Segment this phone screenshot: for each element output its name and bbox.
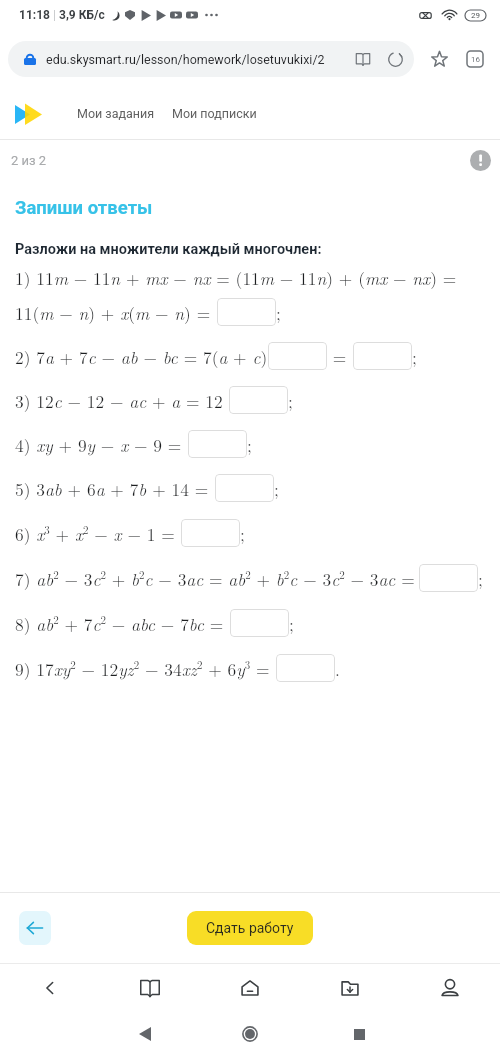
button[interactable] [268, 342, 327, 370]
other: Reload [387, 51, 404, 68]
button[interactable]: Profile [400, 964, 500, 1012]
staticText: 6) x3 + x2 − x − 1 = [15, 521, 175, 546]
staticText: 8) ab2 + 7c2 − abc − 7bc = [15, 611, 224, 636]
staticText: edu.skysmart.ru/lesson/homework/losetuvu… [46, 52, 325, 67]
staticText: Запиши ответы [15, 197, 153, 219]
button[interactable]: Downloads [300, 964, 400, 1012]
staticText: ; [274, 476, 279, 501]
button[interactable] [181, 519, 240, 547]
button[interactable]: Back [19, 911, 51, 945]
button[interactable]: Skysmart [12, 100, 46, 128]
button[interactable]: edu.skysmart.ru/lesson/homework/losetuvu… [8, 41, 414, 77]
button[interactable]: Мои задания [77, 98, 155, 129]
staticText: . [335, 656, 340, 681]
button[interactable]: Back [0, 964, 100, 1012]
staticText: 29 [471, 11, 480, 20]
staticText: 1) 11m − 11n + mx − nx = (11m − 11n) + (… [15, 265, 457, 290]
button[interactable] [188, 430, 247, 458]
button[interactable]: Back [124, 1013, 166, 1055]
button[interactable]: Home [200, 964, 300, 1012]
staticText: 4) xy + 9y − x − 9 = [15, 432, 182, 457]
button[interactable]: Bookmarks [100, 964, 200, 1012]
staticText: 2 из 2 [11, 153, 47, 168]
staticText: | [50, 8, 59, 22]
staticText: 3) 12c − 12 − ac + a = 12 [15, 388, 223, 413]
staticText: 3,9 КБ/с [59, 8, 105, 22]
staticText: ; [247, 432, 252, 457]
staticText: 2) 7a + 7c − ab − bc = 7(a + c) [15, 344, 268, 369]
staticText: 11:18 [19, 8, 50, 22]
other: Reader [355, 51, 371, 67]
button[interactable]: Tabs [461, 45, 489, 73]
button[interactable] [353, 342, 412, 370]
button[interactable] [215, 474, 274, 502]
staticText: 5) 3ab + 6a + 7b + 14 = [15, 476, 209, 501]
button[interactable] [419, 564, 478, 592]
button[interactable]: Info [470, 150, 491, 171]
button[interactable] [230, 609, 289, 637]
button[interactable]: Recents [338, 1013, 380, 1055]
staticText: ; [288, 388, 293, 413]
button[interactable]: Сдать работу [187, 911, 313, 945]
button[interactable]: Home [229, 1013, 271, 1055]
staticText: Мои задания [77, 106, 155, 121]
staticText: 7) ab2 − 3c2 + b2c − 3ac = ab2 + b2c − 3… [15, 566, 415, 591]
staticText: ; [240, 521, 245, 546]
button[interactable] [276, 654, 335, 682]
staticText: ; [478, 566, 483, 591]
button[interactable]: Bookmark [425, 45, 453, 73]
staticText: 9) 17xy2 − 12yz2 − 34xz2 + 6y3 = [15, 656, 270, 681]
button[interactable] [217, 298, 276, 326]
staticText: ; [289, 611, 294, 636]
staticText: = [327, 344, 353, 369]
staticText: Разложи на множители каждый многочлен: [15, 241, 322, 258]
button[interactable]: Мои подписки [172, 98, 257, 129]
staticText: ; [276, 300, 281, 325]
staticText: 11(m − n) + x(m − n) = [15, 300, 211, 325]
staticText: Сдать работу [206, 920, 294, 936]
button[interactable] [229, 386, 288, 414]
staticText: ; [412, 344, 417, 369]
staticText: 16 [471, 55, 480, 64]
staticText: Мои подписки [172, 106, 257, 121]
